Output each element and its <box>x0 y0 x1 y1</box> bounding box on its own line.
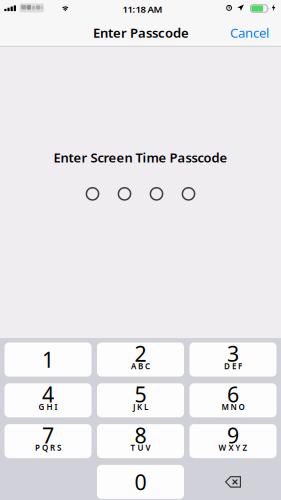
staticText: G H I <box>38 402 57 412</box>
button[interactable]: 7 <box>4 424 91 458</box>
staticText: 1 <box>42 345 54 374</box>
staticText: T U V <box>130 442 150 453</box>
staticText: Enter Screen Time Passcode <box>53 149 227 166</box>
staticText: 9 <box>227 421 239 449</box>
button[interactable]: 8 <box>97 424 184 458</box>
staticText: 4 <box>42 380 54 408</box>
button[interactable]: 1 <box>4 342 91 376</box>
staticText: Enter Passcode <box>93 24 189 41</box>
staticText: J K L <box>133 402 148 412</box>
staticText: 3 <box>227 339 239 368</box>
staticText: W X Y Z <box>218 442 247 453</box>
staticText: M N O <box>221 402 244 412</box>
button[interactable]: Delete <box>189 465 276 499</box>
staticText: A B C <box>131 361 150 371</box>
staticText: 11:18 AM <box>122 3 162 15</box>
staticText: 6 <box>227 380 239 408</box>
staticText: 8 <box>134 421 146 449</box>
button[interactable]: 5 <box>97 383 184 417</box>
staticText: 7 <box>42 421 54 449</box>
button[interactable]: 2 <box>97 342 184 376</box>
button[interactable]: 0 <box>97 465 184 499</box>
button[interactable]: 6 <box>189 383 276 417</box>
button[interactable]: 9 <box>189 424 276 458</box>
staticText: D E F <box>224 361 242 371</box>
staticText: 0 <box>134 468 146 496</box>
staticText: 5 <box>134 380 146 408</box>
button[interactable]: Cancel <box>220 18 281 47</box>
button[interactable]: 4 <box>4 383 91 417</box>
staticText: 2 <box>134 339 146 368</box>
staticText: Cancel <box>230 24 269 41</box>
staticText: P Q R S <box>35 442 61 453</box>
button[interactable]: 3 <box>189 342 276 376</box>
